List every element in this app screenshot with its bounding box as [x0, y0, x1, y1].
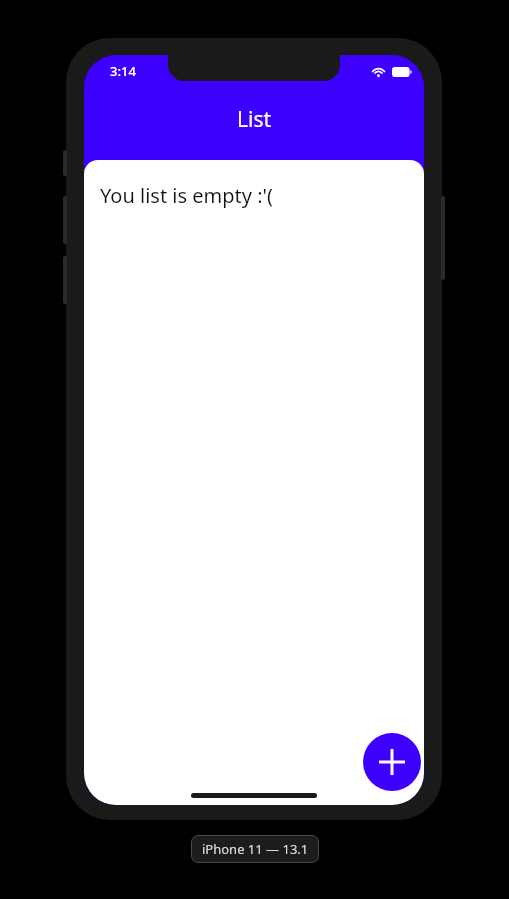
other: Wi-Fi	[371, 66, 386, 77]
button[interactable]: Add item	[363, 733, 421, 791]
staticText: 3:14	[110, 62, 136, 80]
button[interactable]: iPhone 11 — 13.1	[191, 835, 319, 863]
staticText: List	[237, 105, 272, 134]
other: Battery	[392, 67, 412, 77]
staticText: You list is empty :'(	[100, 182, 273, 209]
staticText: iPhone 11 — 13.1	[202, 840, 309, 858]
